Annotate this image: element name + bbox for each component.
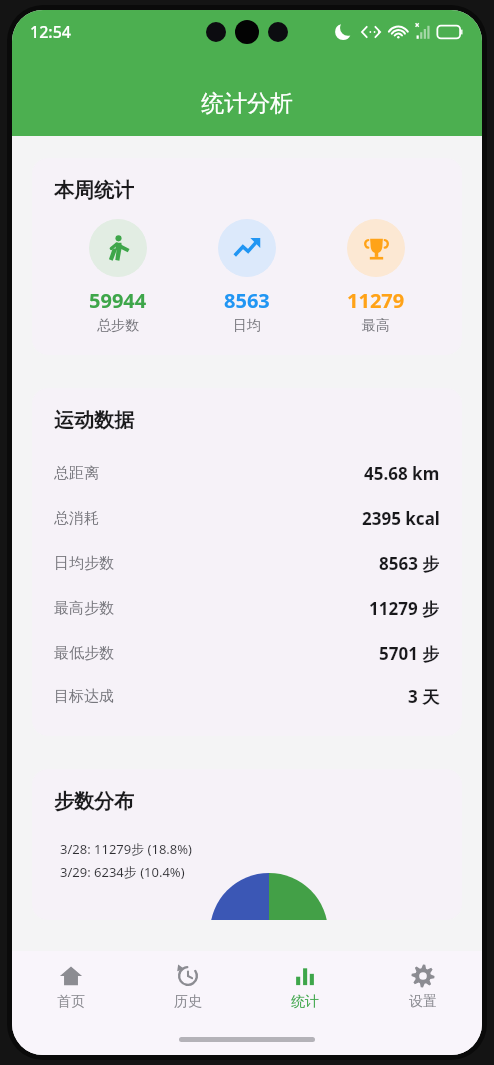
- staticText: 统计分析: [201, 89, 293, 118]
- button[interactable]: 8563: [182, 219, 311, 335]
- button[interactable]: 总距离: [54, 451, 440, 496]
- staticText: 运动数据: [54, 408, 134, 433]
- staticText: 45.68 km: [364, 462, 440, 485]
- staticText: 59944: [89, 287, 147, 314]
- staticText: 3/28: 11279步 (18.8%): [60, 840, 192, 858]
- staticText: 步数分布: [54, 789, 134, 814]
- button[interactable]: 11279: [311, 219, 440, 335]
- staticText: 总距离: [54, 464, 99, 483]
- staticText: 3/29: 6234步 (10.4%): [60, 863, 185, 881]
- staticText: 统计: [291, 993, 319, 1011]
- button[interactable]: 步数分布: [32, 769, 462, 920]
- staticText: 8563 步: [379, 552, 440, 575]
- staticText: 5701 步: [379, 642, 440, 665]
- button[interactable]: 本周统计: [32, 158, 462, 355]
- button[interactable]: 最高步数: [54, 586, 440, 631]
- staticText: 最低步数: [54, 644, 114, 663]
- staticText: 目标达成: [54, 687, 114, 706]
- button[interactable]: 设置: [364, 964, 482, 1011]
- staticText: 日均步数: [54, 554, 114, 573]
- staticText: 8563: [224, 287, 270, 314]
- button[interactable]: 日均步数: [54, 541, 440, 586]
- staticText: 最高步数: [54, 599, 114, 618]
- button[interactable]: 历史: [129, 964, 246, 1011]
- staticText: 11279 步: [369, 597, 440, 620]
- staticText: 总消耗: [54, 509, 99, 528]
- staticText: 3 天: [408, 685, 440, 708]
- button[interactable]: 首页: [12, 964, 129, 1011]
- staticText: 历史: [174, 993, 202, 1011]
- staticText: 最高: [362, 317, 390, 335]
- button[interactable]: 总消耗: [54, 496, 440, 541]
- staticText: 首页: [57, 993, 85, 1011]
- button[interactable]: 统计: [246, 964, 364, 1011]
- button[interactable]: 目标达成: [54, 676, 440, 716]
- staticText: 设置: [409, 993, 437, 1011]
- staticText: 2395 kcal: [362, 507, 440, 530]
- button[interactable]: 59944: [54, 219, 182, 335]
- button[interactable]: 最低步数: [54, 631, 440, 676]
- staticText: 本周统计: [54, 178, 134, 203]
- staticText: 日均: [233, 317, 261, 335]
- staticText: 12:54: [30, 21, 71, 43]
- staticText: 总步数: [97, 317, 139, 335]
- staticText: 11279: [347, 287, 405, 314]
- button[interactable]: 运动数据: [32, 388, 462, 736]
